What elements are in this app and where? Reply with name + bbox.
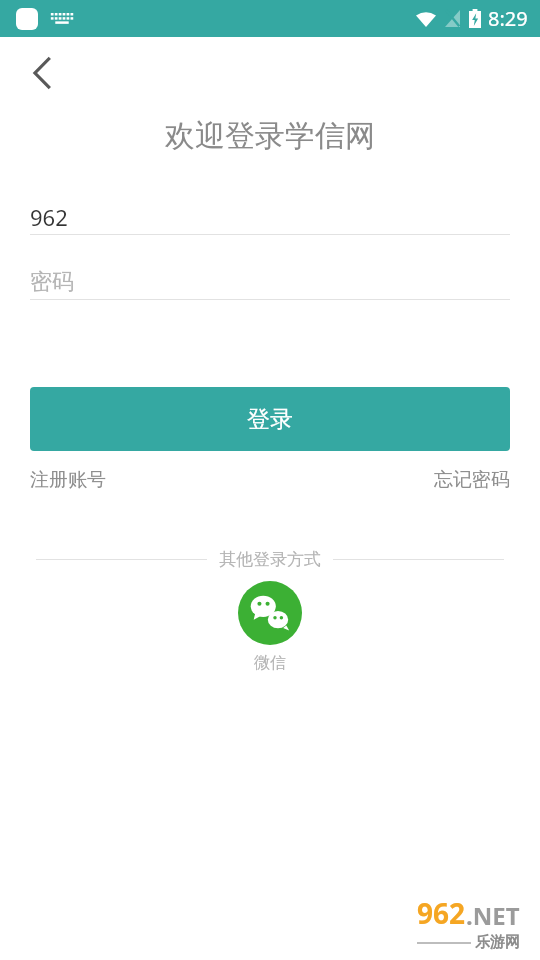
staticText: 密码 xyxy=(30,268,74,296)
staticText: 8:29 xyxy=(488,5,528,32)
staticText: 注册账号 xyxy=(30,468,106,492)
staticText: .NET xyxy=(466,899,520,932)
staticText: 962 xyxy=(30,202,68,232)
staticText: 登录 xyxy=(247,405,293,434)
button[interactable]: 注册账号 xyxy=(30,468,106,492)
button[interactable]: 忘记密码 xyxy=(434,468,510,492)
button[interactable]: Back xyxy=(18,49,66,97)
staticText: 乐游网 xyxy=(475,933,520,952)
staticText: 微信 xyxy=(254,653,286,673)
button[interactable]: 微信 xyxy=(0,581,540,673)
staticText: 忘记密码 xyxy=(434,468,510,492)
staticText: 962 xyxy=(417,894,466,932)
button[interactable]: 密码 xyxy=(30,265,510,299)
staticText: 欢迎登录学信网 xyxy=(165,117,375,155)
staticText: 其他登录方式 xyxy=(219,549,321,570)
button[interactable]: 962 xyxy=(30,200,510,234)
button[interactable]: 登录 xyxy=(30,387,510,451)
